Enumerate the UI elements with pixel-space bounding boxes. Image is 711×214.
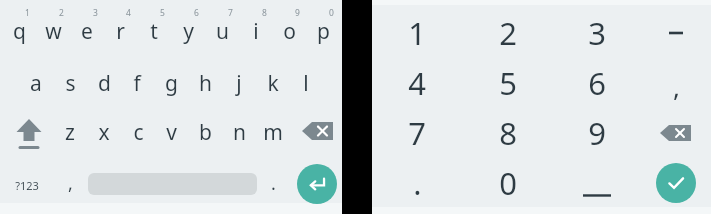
button[interactable]: n <box>210 110 268 154</box>
button[interactable]: 8 <box>478 109 538 157</box>
button[interactable]: q <box>0 9 48 53</box>
button[interactable]: 5 <box>153 5 171 21</box>
staticText: w <box>45 17 62 46</box>
button[interactable]: Backspace <box>658 119 694 147</box>
staticText: e <box>81 17 93 46</box>
button[interactable]: 4 <box>119 5 137 21</box>
staticText: q <box>13 17 26 46</box>
button[interactable]: s <box>41 61 99 105</box>
staticText: 9 <box>295 7 300 19</box>
button[interactable]: 2 <box>478 9 538 57</box>
staticText: 5 <box>499 62 517 104</box>
button[interactable]: d <box>75 61 133 105</box>
button[interactable]: . <box>261 161 285 205</box>
staticText: . <box>413 162 422 204</box>
button[interactable]: r <box>91 9 149 53</box>
button[interactable]: 3 <box>567 9 627 57</box>
button[interactable]: k <box>244 61 302 105</box>
staticText: 4 <box>408 62 426 104</box>
button[interactable]: 0 <box>478 159 538 207</box>
button[interactable]: j <box>210 61 268 105</box>
button[interactable]: g <box>142 61 200 105</box>
button[interactable]: a <box>7 61 65 105</box>
button[interactable]: e <box>58 9 116 53</box>
button[interactable]: y <box>159 9 217 53</box>
button[interactable]: , <box>656 64 696 108</box>
staticText: b <box>199 118 212 147</box>
staticText: c <box>133 118 144 147</box>
button[interactable]: p <box>294 9 352 53</box>
button[interactable]: 7 <box>221 5 239 21</box>
staticText: , <box>673 69 680 104</box>
button[interactable]: Underscore <box>567 159 627 207</box>
staticText: , <box>68 171 73 196</box>
button[interactable]: 2 <box>52 5 70 21</box>
button[interactable]: b <box>176 110 234 154</box>
button[interactable]: 6 <box>187 5 205 21</box>
staticText: d <box>98 69 111 98</box>
button[interactable]: Shift <box>6 110 52 155</box>
button[interactable]: h <box>176 61 234 105</box>
staticText: x <box>98 118 110 147</box>
staticText: 9 <box>588 112 606 154</box>
staticText: 5 <box>160 7 165 19</box>
staticText: 6 <box>194 7 199 19</box>
staticText: f <box>133 69 141 98</box>
button[interactable]: z <box>41 110 99 154</box>
staticText: 3 <box>93 7 98 19</box>
staticText: 8 <box>499 112 517 154</box>
staticText: a <box>30 69 42 98</box>
staticText: m <box>263 118 283 147</box>
staticText: p <box>317 17 330 46</box>
staticText: 8 <box>262 7 267 19</box>
staticText: 1 <box>408 12 426 54</box>
button[interactable]: f <box>108 61 166 105</box>
button[interactable]: m <box>244 110 302 154</box>
staticText: 2 <box>59 7 64 19</box>
button[interactable]: Backspace <box>300 116 336 146</box>
staticText: 3 <box>588 12 606 54</box>
button[interactable]: i <box>227 9 285 53</box>
button[interactable]: 9 <box>288 5 306 21</box>
button[interactable]: 8 <box>255 5 273 21</box>
button[interactable]: 1 <box>387 9 447 57</box>
button[interactable]: 4 <box>387 59 447 107</box>
staticText: 7 <box>408 112 426 154</box>
button[interactable]: o <box>260 9 318 53</box>
staticText: 4 <box>126 7 131 19</box>
staticText: k <box>267 69 279 98</box>
button[interactable]: c <box>109 110 167 154</box>
button[interactable]: 9 <box>567 109 627 157</box>
button[interactable]: 0 <box>322 5 340 21</box>
button[interactable]: Minus <box>654 11 698 55</box>
button[interactable]: t <box>125 9 183 53</box>
staticText: o <box>283 17 296 46</box>
staticText: r <box>116 17 125 46</box>
staticText: z <box>65 118 75 147</box>
button[interactable]: u <box>193 9 251 53</box>
button[interactable]: 5 <box>478 59 538 107</box>
button[interactable]: w <box>24 9 82 53</box>
staticText: l <box>303 69 309 98</box>
staticText: 6 <box>588 62 606 104</box>
button[interactable]: v <box>142 110 200 154</box>
staticText: s <box>65 69 76 98</box>
button[interactable]: 6 <box>567 59 627 107</box>
button[interactable]: 7 <box>387 109 447 157</box>
button[interactable]: ?123 <box>4 163 50 207</box>
button[interactable]: . <box>387 159 447 207</box>
button[interactable]: x <box>75 110 133 154</box>
button[interactable]: 3 <box>86 5 104 21</box>
button[interactable]: l <box>277 61 335 105</box>
staticText: 0 <box>329 7 334 19</box>
staticText: u <box>216 17 229 46</box>
staticText: j <box>236 69 242 98</box>
button[interactable]: Confirm <box>656 163 696 203</box>
staticText: v <box>166 118 177 147</box>
button[interactable]: 1 <box>18 5 36 21</box>
button[interactable]: Enter <box>297 164 337 204</box>
staticText: h <box>199 69 212 98</box>
button[interactable]: , <box>58 161 82 205</box>
staticText: n <box>233 118 246 147</box>
